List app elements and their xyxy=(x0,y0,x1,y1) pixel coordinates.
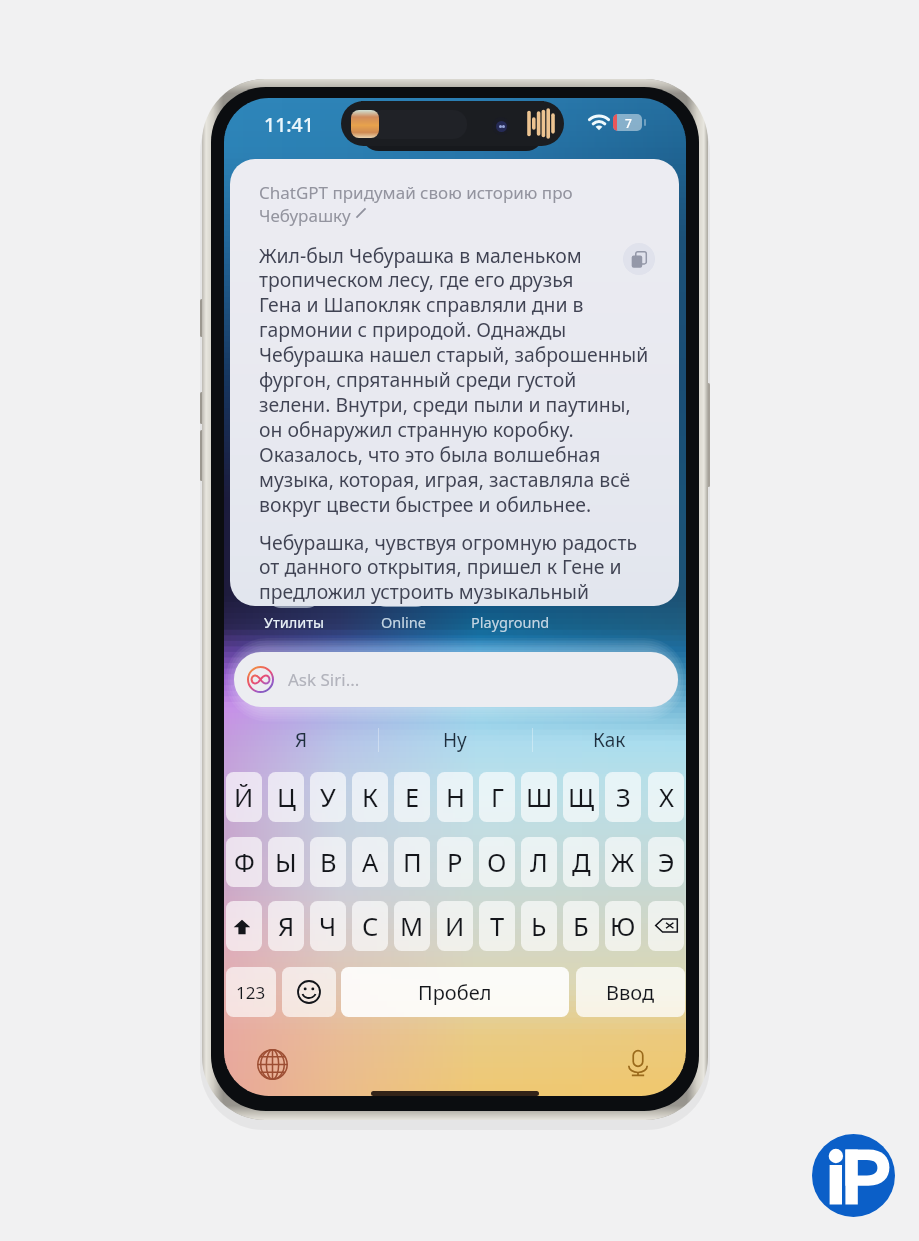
button[interactable]: Д xyxy=(563,837,599,887)
button[interactable]: 123 xyxy=(226,967,276,1017)
staticText: Ask Siri... xyxy=(288,668,360,691)
button[interactable]: Ь xyxy=(521,901,557,951)
button[interactable]: ChatGPT придумай свою историю про Чебура… xyxy=(230,159,679,606)
staticText: Г xyxy=(491,780,504,815)
button[interactable]: Б xyxy=(563,901,599,951)
button[interactable]: И xyxy=(437,901,473,951)
button[interactable]: Ц xyxy=(268,772,304,822)
staticText: Т xyxy=(490,909,505,944)
staticText: Утилиты xyxy=(264,612,324,632)
button[interactable]: П xyxy=(394,837,430,887)
button[interactable]: Ч xyxy=(310,901,346,951)
button[interactable]: Ю xyxy=(605,901,641,951)
staticText: Х xyxy=(659,780,674,815)
staticText: 11:41 xyxy=(264,111,314,138)
button[interactable]: Copy xyxy=(623,243,655,275)
staticText: Н xyxy=(446,780,465,815)
staticText: Щ xyxy=(568,780,595,815)
button[interactable]: Ну xyxy=(378,718,532,762)
staticText: Э xyxy=(658,845,675,880)
staticText: О xyxy=(487,845,507,880)
staticText: Л xyxy=(530,845,548,880)
staticText: Чебурашка, чувствуя огромную радость от … xyxy=(259,529,638,605)
staticText: Я xyxy=(278,909,295,944)
staticText: К xyxy=(362,780,378,815)
staticText: Б xyxy=(573,909,589,944)
staticText: Ввод xyxy=(606,979,655,1006)
button[interactable]: М xyxy=(394,901,430,951)
button[interactable]: Ы xyxy=(268,837,304,887)
button[interactable]: Ввод xyxy=(576,967,685,1017)
button[interactable]: О xyxy=(479,837,515,887)
button[interactable]: Н xyxy=(437,772,473,822)
button[interactable]: Change keyboard language xyxy=(254,1046,290,1082)
button[interactable]: Ф xyxy=(226,837,262,887)
button[interactable]: Emoji keyboard xyxy=(282,967,336,1017)
staticText: Е xyxy=(405,780,420,815)
button[interactable]: Е xyxy=(394,772,430,822)
staticText: Ю xyxy=(610,909,636,944)
staticText: Ну xyxy=(443,727,467,753)
button[interactable]: Playground xyxy=(461,608,560,636)
staticText: А xyxy=(362,845,379,880)
staticText: Playground xyxy=(471,612,550,632)
button[interactable]: Л xyxy=(521,837,557,887)
button[interactable]: Р xyxy=(437,837,473,887)
button[interactable]: iPhones.ru xyxy=(812,1134,895,1217)
staticText: Пробел xyxy=(418,979,492,1006)
button[interactable]: А xyxy=(352,837,388,887)
staticText: Ч xyxy=(319,909,337,944)
button[interactable]: Т xyxy=(479,901,515,951)
button[interactable]: Я xyxy=(268,901,304,951)
staticText: Ф xyxy=(234,845,255,880)
button[interactable]: Ask Siri... xyxy=(234,652,678,707)
button[interactable]: Ш xyxy=(521,772,557,822)
button[interactable] xyxy=(648,901,684,951)
staticText: П xyxy=(403,845,422,880)
staticText: 123 xyxy=(236,981,266,1004)
button[interactable]: Х xyxy=(648,772,684,822)
button[interactable]: Э xyxy=(648,837,684,887)
button[interactable]: Й xyxy=(226,772,262,822)
staticText: Online xyxy=(381,612,426,632)
staticText: Ж xyxy=(611,845,635,880)
staticText: С xyxy=(362,909,379,944)
staticText: У xyxy=(320,780,336,815)
button[interactable]: Щ xyxy=(563,772,599,822)
button[interactable]: С xyxy=(352,901,388,951)
button[interactable]: З xyxy=(605,772,641,822)
staticText: З xyxy=(616,780,631,815)
button[interactable]: Я xyxy=(224,718,378,762)
button[interactable]: Dictation xyxy=(620,1045,656,1081)
button[interactable]: К xyxy=(352,772,388,822)
staticText: И xyxy=(445,909,465,944)
staticText: Ц xyxy=(277,780,296,815)
button[interactable]: Online xyxy=(370,608,436,636)
staticText: Жил-был Чебурашка в маленьком тропическо… xyxy=(259,242,649,518)
staticText: Й xyxy=(234,780,254,815)
button[interactable]: Как xyxy=(532,718,686,762)
staticText: Д xyxy=(572,845,591,880)
staticText: Ь xyxy=(531,909,547,944)
staticText: Р xyxy=(447,845,463,880)
button[interactable]: Пробел xyxy=(341,967,569,1017)
staticText: Я xyxy=(295,727,308,753)
staticText: В xyxy=(320,845,337,880)
staticText: 7 xyxy=(625,115,632,131)
button[interactable]: У xyxy=(310,772,346,822)
button[interactable]: В xyxy=(310,837,346,887)
button[interactable]: Ж xyxy=(605,837,641,887)
staticText: Как xyxy=(593,727,626,753)
staticText: Ш xyxy=(526,780,553,815)
staticText: М xyxy=(400,909,424,944)
button[interactable] xyxy=(226,901,262,951)
button[interactable]: Утилиты xyxy=(254,608,334,636)
staticText: Ы xyxy=(275,845,297,880)
staticText: ChatGPT придумай свою историю про Чебура… xyxy=(259,181,573,227)
button[interactable]: Г xyxy=(479,772,515,822)
